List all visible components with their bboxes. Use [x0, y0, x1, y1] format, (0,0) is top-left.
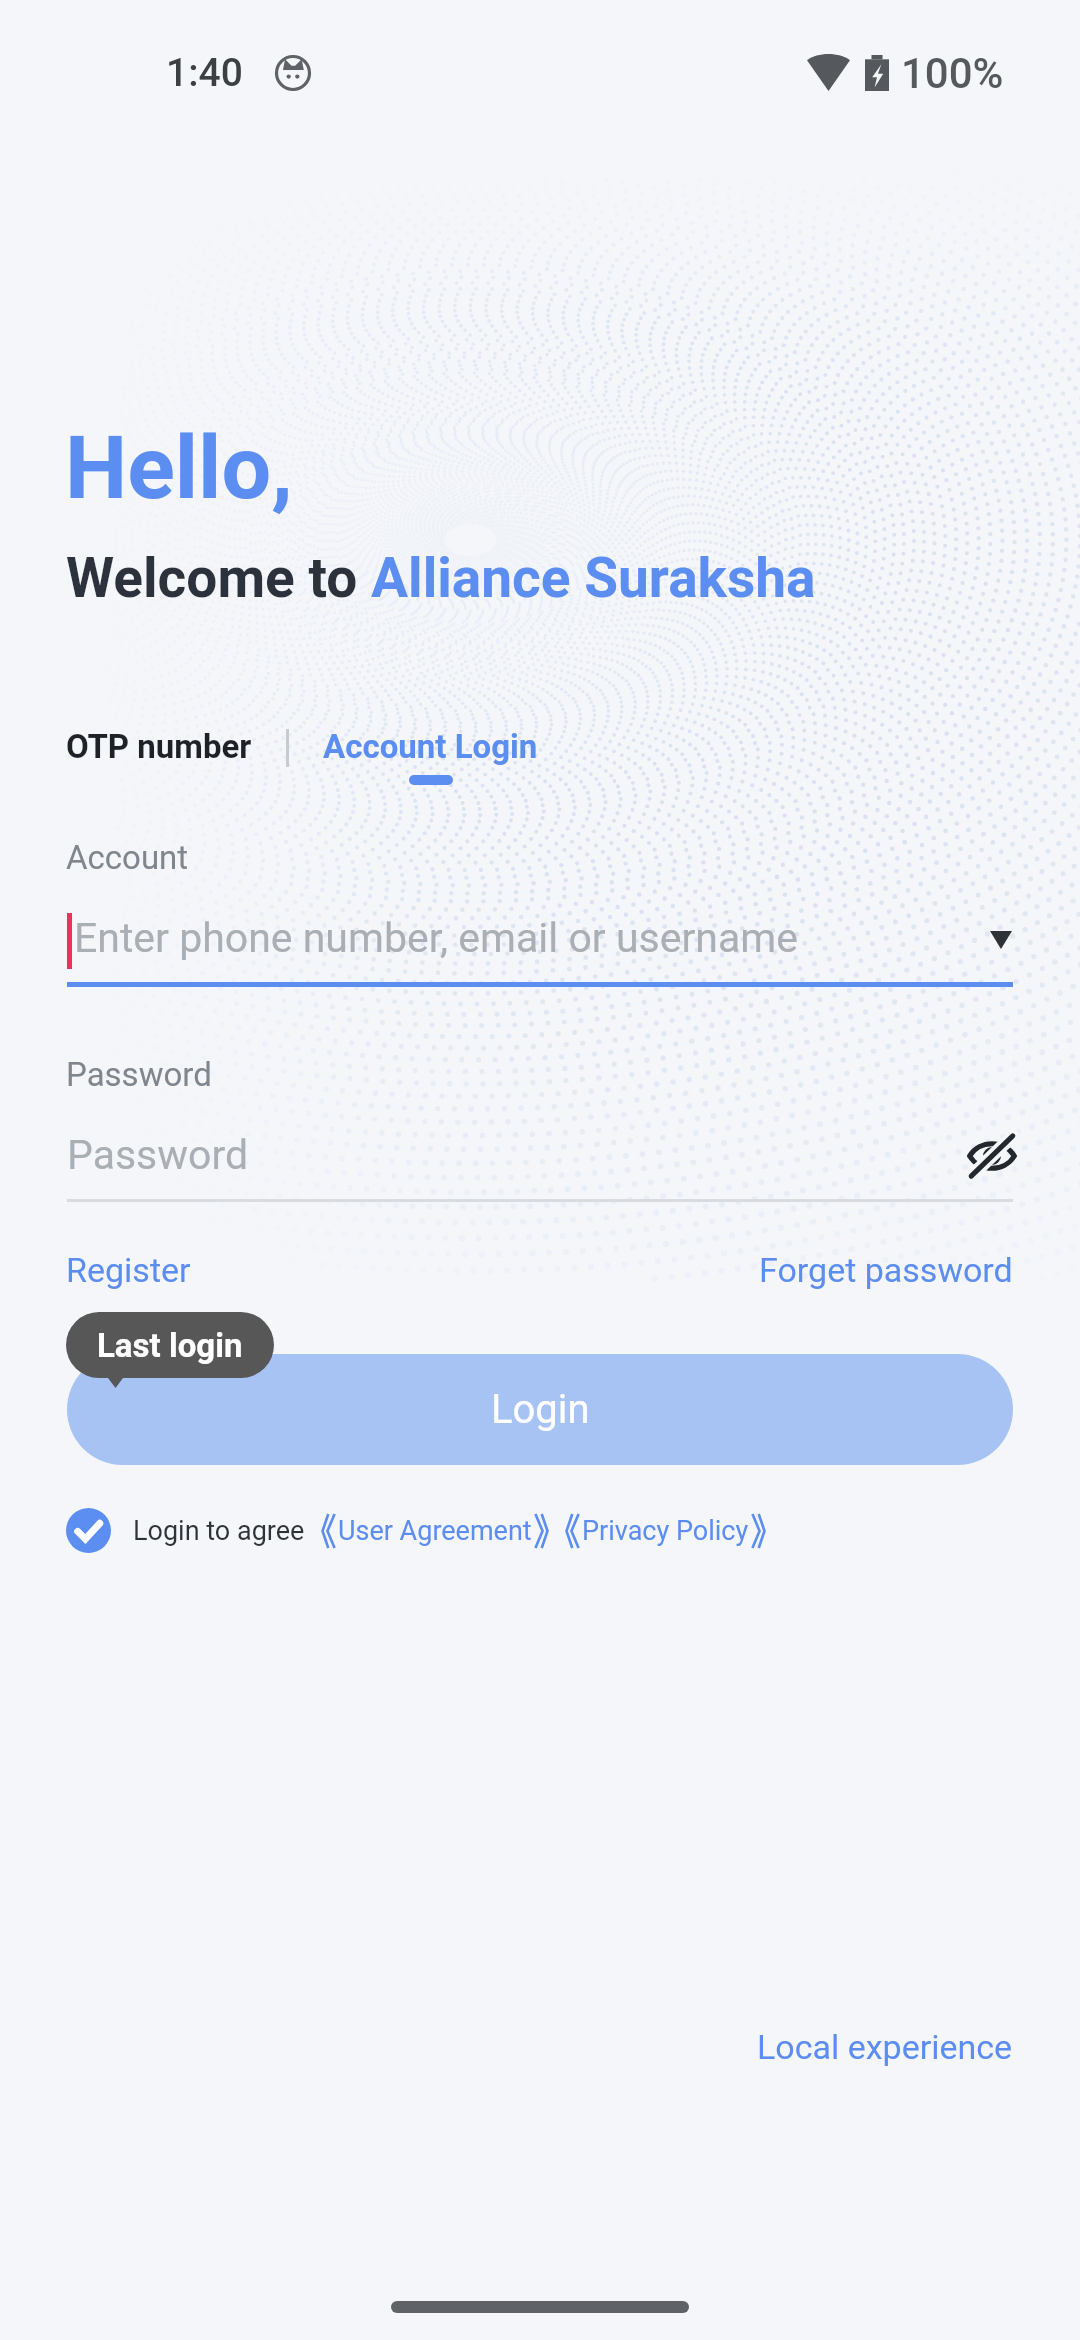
- staticText: Login to agree: [133, 1515, 305, 1547]
- staticText: Account: [66, 838, 189, 877]
- staticText: 100%: [901, 49, 1004, 98]
- staticText: User Agreement: [338, 1515, 532, 1547]
- staticText: Password: [67, 1131, 249, 1179]
- button[interactable]: Expand account list: [975, 910, 1027, 970]
- staticText: Password: [66, 1055, 212, 1094]
- staticText: Account Login: [323, 727, 538, 766]
- button[interactable]: Local experience: [745, 2011, 1025, 2083]
- button[interactable]: Login to agree: [66, 1508, 766, 1553]
- staticText: Login: [491, 1386, 590, 1433]
- button[interactable]: OTP number: [66, 711, 252, 784]
- button[interactable]: Show password: [966, 1132, 1018, 1180]
- staticText: Local experience: [757, 2027, 1013, 2067]
- staticText: Enter phone number, email or username: [74, 914, 798, 962]
- staticText: Last login: [97, 1326, 243, 1365]
- button[interactable]: Password: [67, 1118, 1013, 1199]
- staticText: Welcome to Alliance Suraksha: [66, 546, 816, 610]
- button[interactable]: Account Login: [323, 711, 538, 793]
- staticText: Forget password: [759, 1250, 1013, 1290]
- staticText: 1:40: [166, 50, 243, 96]
- button[interactable]: Forget password: [747, 1234, 1025, 1306]
- button[interactable]: Last login: [66, 1312, 274, 1378]
- staticText: OTP number: [66, 727, 252, 766]
- staticText: Hello,: [65, 416, 293, 519]
- button[interactable]: Login: [67, 1354, 1013, 1465]
- staticText: Register: [66, 1250, 191, 1290]
- button[interactable]: Register: [54, 1234, 203, 1306]
- button[interactable]: Enter phone number, email or username: [67, 900, 1013, 982]
- staticText: Privacy Policy: [582, 1515, 749, 1547]
